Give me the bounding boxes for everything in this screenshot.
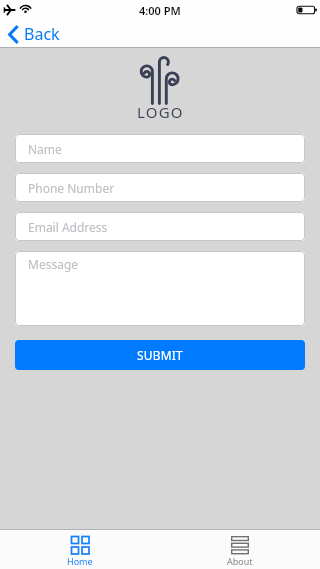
button[interactable]: Phone Number — [15, 173, 305, 202]
button[interactable]: Message — [15, 251, 305, 326]
button[interactable]: Home — [0, 530, 160, 569]
button[interactable]: Name — [15, 134, 305, 163]
staticText: Email Address — [28, 219, 108, 235]
staticText: Back — [24, 23, 60, 45]
button[interactable]: Email Address — [15, 212, 305, 241]
staticText: Phone Number — [28, 180, 115, 196]
staticText: LOGO — [137, 102, 184, 122]
button[interactable]: Back — [0, 20, 320, 47]
button[interactable]: SUBMIT — [15, 340, 305, 370]
staticText: Name — [28, 141, 62, 157]
staticText: Home — [67, 555, 93, 567]
button[interactable]: About — [160, 530, 320, 569]
staticText: About — [227, 555, 253, 567]
staticText: 4:00 PM — [139, 3, 181, 18]
staticText: Message — [28, 256, 79, 272]
staticText: SUBMIT — [137, 347, 183, 363]
